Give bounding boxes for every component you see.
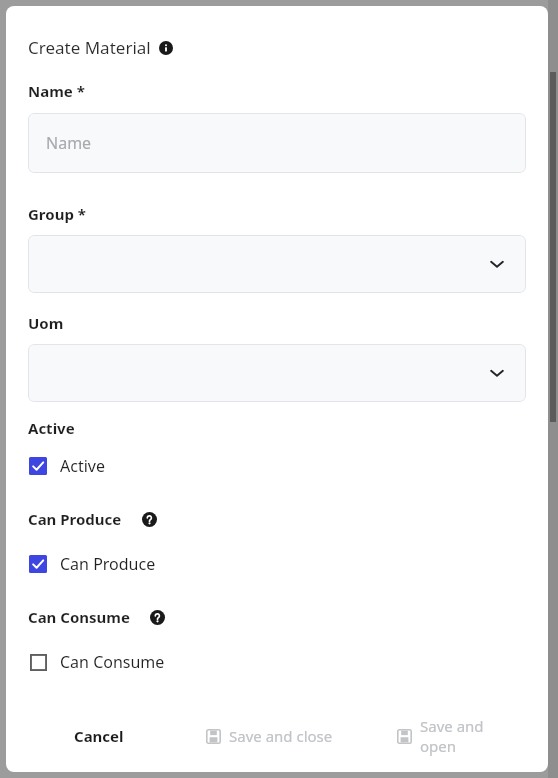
button[interactable]: Open dropdown	[28, 344, 526, 402]
button[interactable]: Save and open	[387, 708, 526, 764]
staticText: Can Produce	[28, 509, 122, 529]
button[interactable]: Can Produce	[28, 553, 156, 575]
button[interactable]: Active	[28, 455, 105, 477]
button[interactable]: Cancel	[64, 718, 134, 754]
staticText: Can Consume	[28, 607, 130, 627]
staticText: Name *	[28, 81, 85, 101]
other: Information	[159, 41, 173, 55]
button[interactable]: Can Consume	[28, 651, 165, 673]
button[interactable]: Create Material	[28, 36, 173, 59]
staticText: Can Consume	[60, 651, 165, 673]
staticText: Name	[46, 132, 92, 154]
other: Help	[150, 610, 165, 625]
staticText: Save and close	[229, 726, 333, 746]
staticText: Active	[60, 455, 105, 477]
staticText: Group *	[28, 204, 86, 224]
staticText: Create Material	[28, 36, 151, 59]
staticText: Can Produce	[60, 553, 156, 575]
other: Help	[142, 512, 157, 527]
staticText: Cancel	[74, 726, 124, 746]
staticText: Save and open	[420, 716, 516, 756]
button[interactable]: Name	[28, 113, 526, 173]
button[interactable]: Save and close	[196, 718, 343, 754]
button[interactable]: Open dropdown	[28, 235, 526, 293]
staticText: Active	[28, 418, 75, 438]
staticText: Uom	[28, 313, 64, 333]
